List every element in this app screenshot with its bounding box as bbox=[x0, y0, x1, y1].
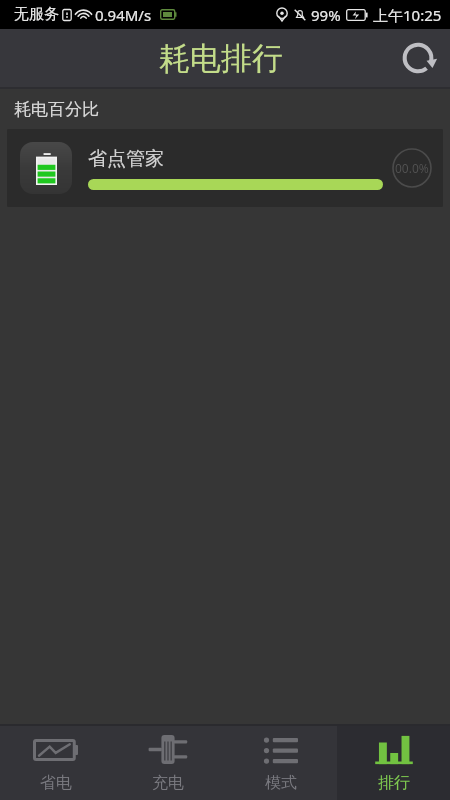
button[interactable]: 模式 bbox=[224, 726, 337, 800]
staticText: 充电 bbox=[152, 773, 184, 793]
staticText: 排行 bbox=[378, 773, 410, 793]
staticText: 无服务 bbox=[14, 5, 59, 24]
staticText: 省电 bbox=[40, 773, 72, 793]
staticText: 耗电排行 bbox=[159, 39, 283, 78]
button[interactable]: 充电 bbox=[112, 726, 224, 800]
button[interactable]: Refresh bbox=[396, 36, 440, 80]
staticText: 耗电百分比 bbox=[14, 99, 99, 120]
staticText: 0.94M/s bbox=[95, 5, 152, 25]
staticText: 99% bbox=[311, 5, 341, 25]
staticText: 模式 bbox=[265, 773, 297, 793]
button[interactable]: 省电 bbox=[0, 726, 112, 800]
button[interactable]: 省点管家 bbox=[7, 129, 443, 207]
staticText: 省点管家 bbox=[88, 147, 164, 171]
staticText: 00.0% bbox=[395, 160, 429, 176]
button[interactable]: 排行 bbox=[337, 726, 450, 800]
staticText: 上午10:25 bbox=[373, 5, 442, 25]
